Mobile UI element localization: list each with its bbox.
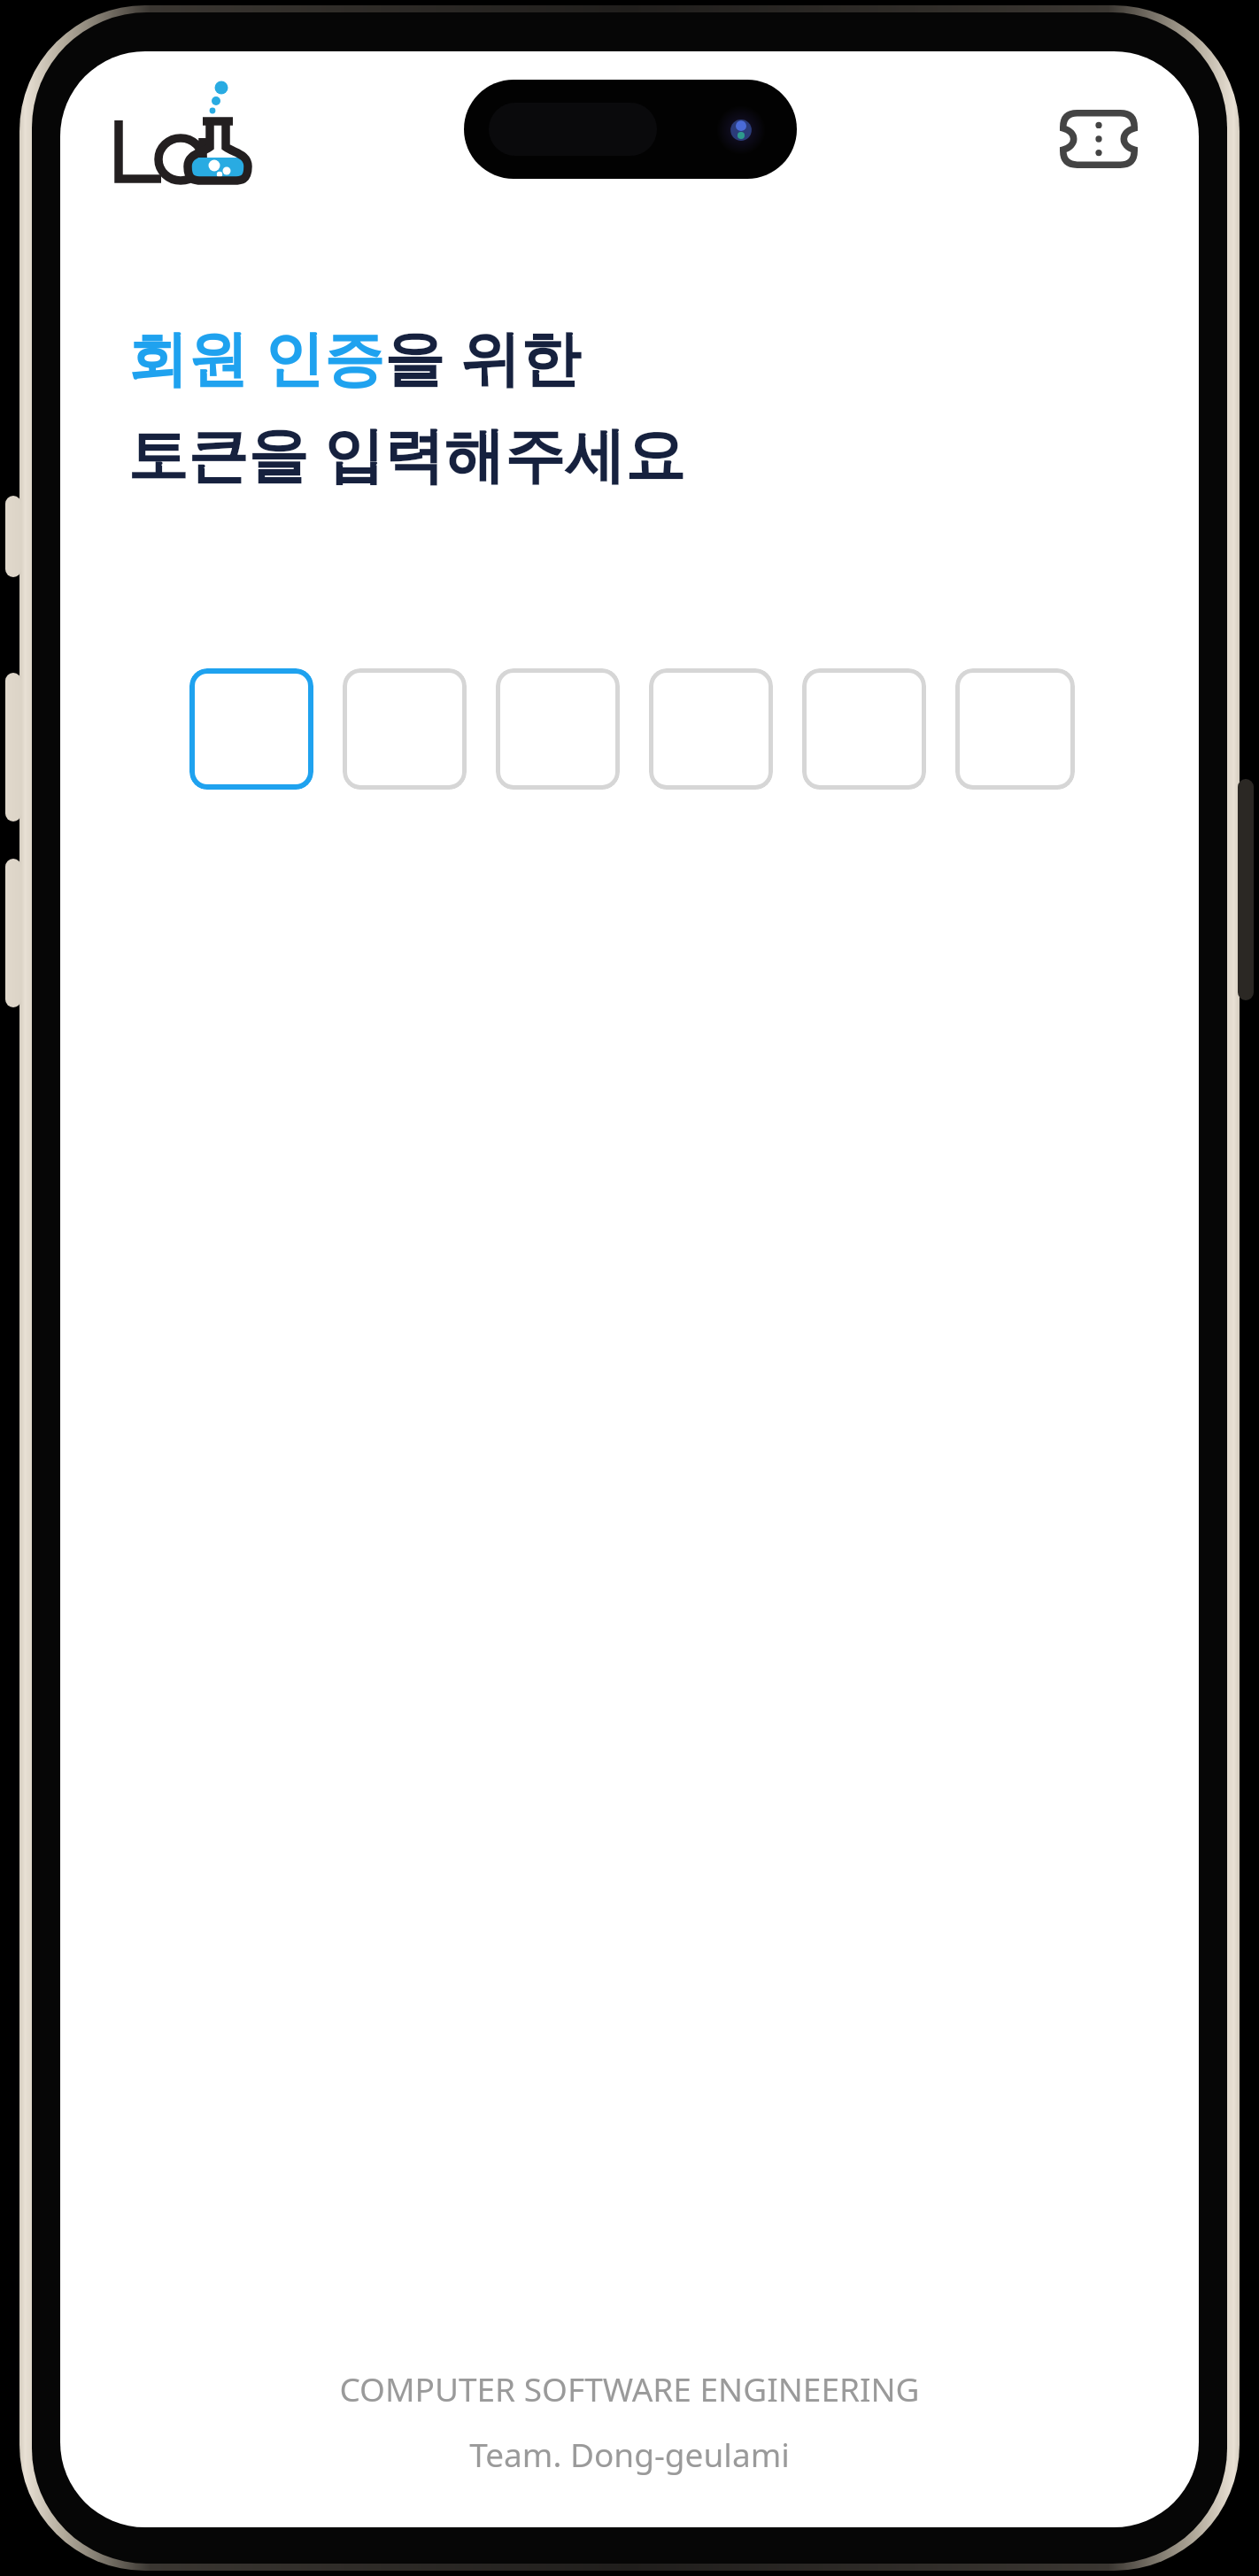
staticText: Team. Dong-geulami (469, 2432, 790, 2476)
staticText: 토큰을 입력해주세요 (127, 412, 685, 494)
button[interactable]: Tickets (1050, 90, 1147, 188)
button[interactable] (189, 668, 313, 790)
button[interactable] (649, 668, 773, 790)
button[interactable] (802, 668, 926, 790)
button[interactable] (496, 668, 620, 790)
button[interactable] (115, 80, 283, 195)
button[interactable] (955, 668, 1075, 790)
button[interactable] (343, 668, 467, 790)
staticText: COMPUTER SOFTWARE ENGINEERING (339, 2366, 920, 2410)
staticText: 회원 인증을 위한 (127, 315, 581, 397)
